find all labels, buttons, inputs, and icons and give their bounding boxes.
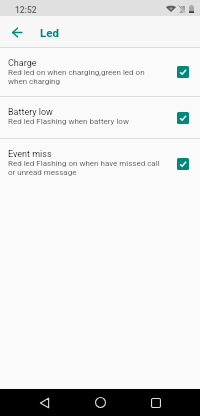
staticText: Led (40, 26, 59, 39)
button[interactable]: Navigate up (3, 18, 31, 46)
button[interactable]: Battery low (0, 97, 200, 138)
button[interactable]: Toggle Charge (177, 66, 189, 78)
staticText: Charge (8, 58, 37, 69)
button[interactable]: Toggle Event miss (177, 158, 189, 170)
staticText: Battery low (8, 107, 53, 118)
staticText: Red led on when charging,green led on wh… (8, 68, 163, 86)
staticText: Red led Flashing on when have missed cal… (8, 159, 163, 177)
button[interactable]: Toggle Battery low (177, 112, 189, 124)
button[interactable]: Back (30, 389, 59, 416)
button[interactable]: Event miss (0, 139, 200, 188)
button[interactable]: Recent apps (141, 389, 170, 416)
button[interactable]: Charge (0, 48, 200, 96)
button[interactable]: Home (86, 389, 115, 416)
staticText: Red led Flashing when battery low (8, 117, 129, 126)
staticText: 12:52 (15, 5, 37, 15)
staticText: Event miss (8, 149, 52, 160)
